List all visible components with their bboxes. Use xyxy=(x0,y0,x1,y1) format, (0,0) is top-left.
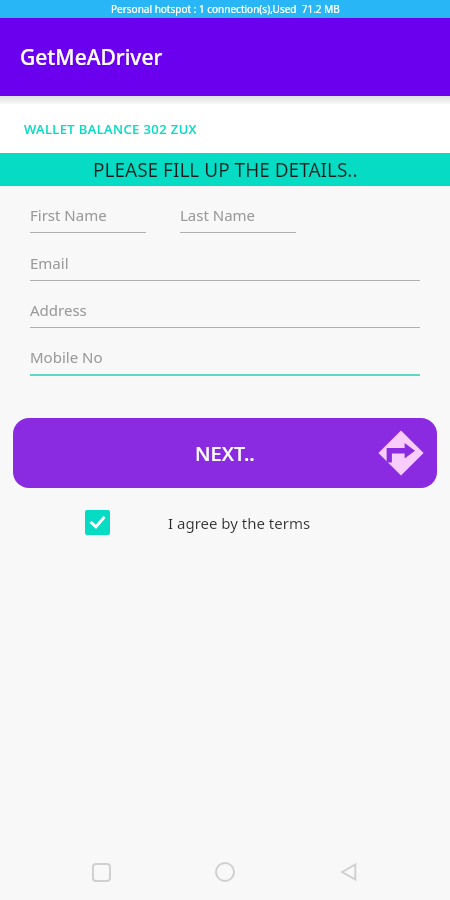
button[interactable]: WALLET BALANCE 302 ZUX xyxy=(0,104,450,153)
button[interactable]: Mobile No xyxy=(30,347,420,376)
staticText: First Name xyxy=(30,205,107,225)
staticText: Mobile No xyxy=(30,347,103,367)
button[interactable]: Address xyxy=(30,300,420,328)
staticText: I agree by the terms xyxy=(168,513,311,533)
button[interactable]: NEXT.. xyxy=(13,418,437,488)
button[interactable]: Home xyxy=(202,849,248,895)
button[interactable]: I agree by the terms xyxy=(0,510,450,535)
staticText: Email xyxy=(30,253,69,273)
staticText: Address xyxy=(30,300,87,320)
other: Next xyxy=(375,427,427,479)
button[interactable]: Recent apps xyxy=(78,849,124,895)
button[interactable]: Back xyxy=(326,849,372,895)
staticText: Personal hotspot : 1 connection(s),Used … xyxy=(111,2,340,16)
staticText: NEXT.. xyxy=(195,440,255,467)
button[interactable]: Last Name xyxy=(180,205,296,233)
staticText: WALLET BALANCE 302 ZUX xyxy=(24,120,197,138)
staticText: PLEASE FILL UP THE DETAILS.. xyxy=(93,157,358,183)
button[interactable]: Email xyxy=(30,253,420,281)
staticText: GetMeADriver xyxy=(20,43,163,72)
staticText: Last Name xyxy=(180,205,256,225)
button[interactable]: First Name xyxy=(30,205,146,233)
